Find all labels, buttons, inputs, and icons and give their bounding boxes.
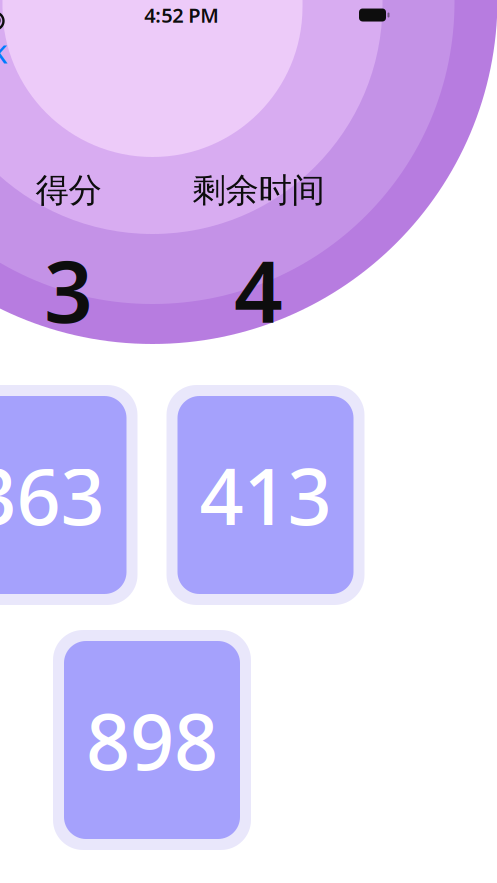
staticText: 4:52 PM: [144, 2, 219, 28]
staticText: 413: [199, 444, 331, 546]
staticText: 得分: [35, 170, 101, 211]
button[interactable]: 413: [166, 385, 364, 605]
staticText: 898: [86, 689, 218, 791]
button[interactable]: ‹: [0, 29, 21, 73]
button[interactable]: 898: [53, 630, 251, 850]
staticText: Back: [0, 30, 7, 72]
button[interactable]: 363: [0, 385, 137, 605]
staticText: 363: [0, 444, 104, 546]
staticText: 3: [44, 233, 93, 346]
staticText: 剩余时间: [192, 170, 324, 211]
staticText: 4: [234, 233, 283, 346]
